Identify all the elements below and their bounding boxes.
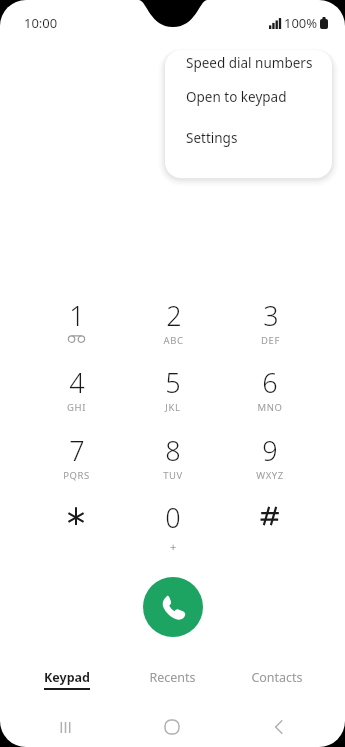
staticText: Open to keypad [186, 88, 287, 106]
button[interactable]: 4 [36, 364, 116, 420]
staticText: 7 [69, 432, 85, 469]
staticText: 5 [165, 364, 181, 401]
staticText: 9 [262, 432, 278, 469]
button[interactable]: 2 [133, 297, 213, 353]
staticText: GHI [67, 401, 86, 414]
button[interactable]: 6 [230, 364, 310, 420]
staticText: Recents [149, 669, 196, 686]
staticText: Contacts [251, 669, 303, 686]
button[interactable]: Call [143, 577, 203, 637]
staticText: 4 [69, 364, 85, 401]
button[interactable]: 0 [133, 499, 213, 555]
button[interactable]: Settings [165, 117, 332, 158]
staticText: Keypad [44, 669, 90, 686]
staticText: 0 [165, 499, 181, 536]
staticText: 1 [69, 297, 85, 334]
button[interactable]: Open to keypad [165, 76, 332, 117]
button[interactable]: 8 [133, 432, 213, 488]
staticText: JKL [165, 401, 181, 414]
button[interactable]: Keypad [17, 662, 117, 698]
staticText: WXYZ [256, 469, 284, 482]
staticText: 6 [262, 364, 278, 401]
staticText: + [170, 539, 177, 554]
button[interactable]: 1 [36, 297, 116, 353]
staticText: 3 [263, 297, 279, 334]
staticText: TUV [163, 469, 183, 482]
staticText: Settings [186, 129, 238, 147]
staticText: 2 [166, 297, 182, 334]
staticText: 10:00 [24, 14, 58, 32]
button[interactable]: Back [267, 715, 291, 739]
button[interactable]: Recent apps [53, 715, 77, 739]
button[interactable]: Recents [122, 662, 222, 698]
button[interactable]: 3 [230, 297, 310, 353]
button[interactable] [36, 499, 116, 555]
button[interactable] [230, 499, 310, 555]
staticText: 8 [165, 432, 181, 469]
button[interactable]: 5 [133, 364, 213, 420]
staticText: ABC [163, 334, 184, 347]
staticText: MNO [257, 401, 283, 414]
staticText: PQRS [63, 469, 90, 482]
staticText: DEF [261, 334, 280, 347]
button[interactable]: 7 [36, 432, 116, 488]
staticText: 100% [284, 14, 318, 32]
button[interactable]: Contacts [227, 662, 327, 698]
staticText: Speed dial numbers [186, 54, 313, 72]
button[interactable]: Speed dial numbers [165, 50, 332, 76]
button[interactable]: 9 [230, 432, 310, 488]
button[interactable]: Home [160, 715, 184, 739]
